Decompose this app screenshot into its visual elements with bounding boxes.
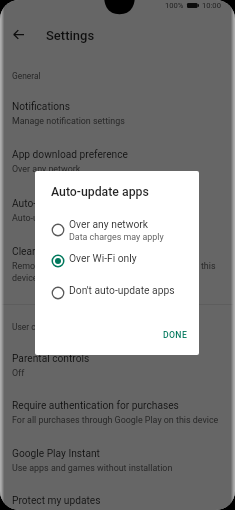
staticText: App download preference (12, 149, 128, 161)
staticText: 10:00 (202, 1, 221, 10)
button[interactable]: DONE (155, 324, 195, 346)
staticText: For all purchases through Google Play on… (12, 415, 219, 425)
staticText: Require authentication for purchases (12, 400, 179, 412)
button[interactable] (0, 92, 235, 130)
button[interactable] (35, 280, 199, 306)
staticText: Data charges may apply (69, 232, 164, 242)
staticText: Over Wi-Fi only (69, 252, 137, 264)
button[interactable] (0, 190, 235, 228)
button[interactable] (0, 392, 235, 430)
staticText: Over any network (69, 218, 149, 230)
staticText: Over any network (12, 164, 81, 174)
button[interactable]: Navigate up (4, 22, 32, 47)
staticText: General (12, 71, 41, 81)
staticText: Manage notification settings (12, 116, 125, 126)
staticText: Clear local search history (12, 246, 126, 258)
staticText: Protect my updates (12, 495, 101, 507)
button[interactable] (0, 141, 235, 179)
staticText: 100% (165, 1, 184, 10)
staticText: Remove the searches you have performed f… (12, 261, 216, 283)
button[interactable] (0, 440, 235, 478)
button[interactable] (0, 487, 235, 510)
staticText: Parental controls (12, 353, 90, 365)
staticText: Use apps and games without installation (12, 463, 173, 473)
staticText: Settings (46, 28, 95, 43)
staticText: User controls (12, 322, 62, 332)
button[interactable] (35, 217, 199, 243)
button[interactable] (35, 248, 199, 274)
staticText: Auto-update apps over Wi-Fi only (12, 213, 142, 223)
staticText: Notifications (12, 101, 70, 113)
staticText: Auto-update apps (12, 198, 93, 210)
staticText: Off (12, 368, 25, 378)
staticText: Don't auto-update apps (69, 284, 175, 296)
staticText: DONE (163, 330, 188, 340)
button[interactable] (0, 344, 235, 382)
staticText: Auto-update apps (51, 185, 149, 199)
button[interactable] (0, 238, 235, 276)
staticText: Google Play Instant (12, 448, 100, 460)
